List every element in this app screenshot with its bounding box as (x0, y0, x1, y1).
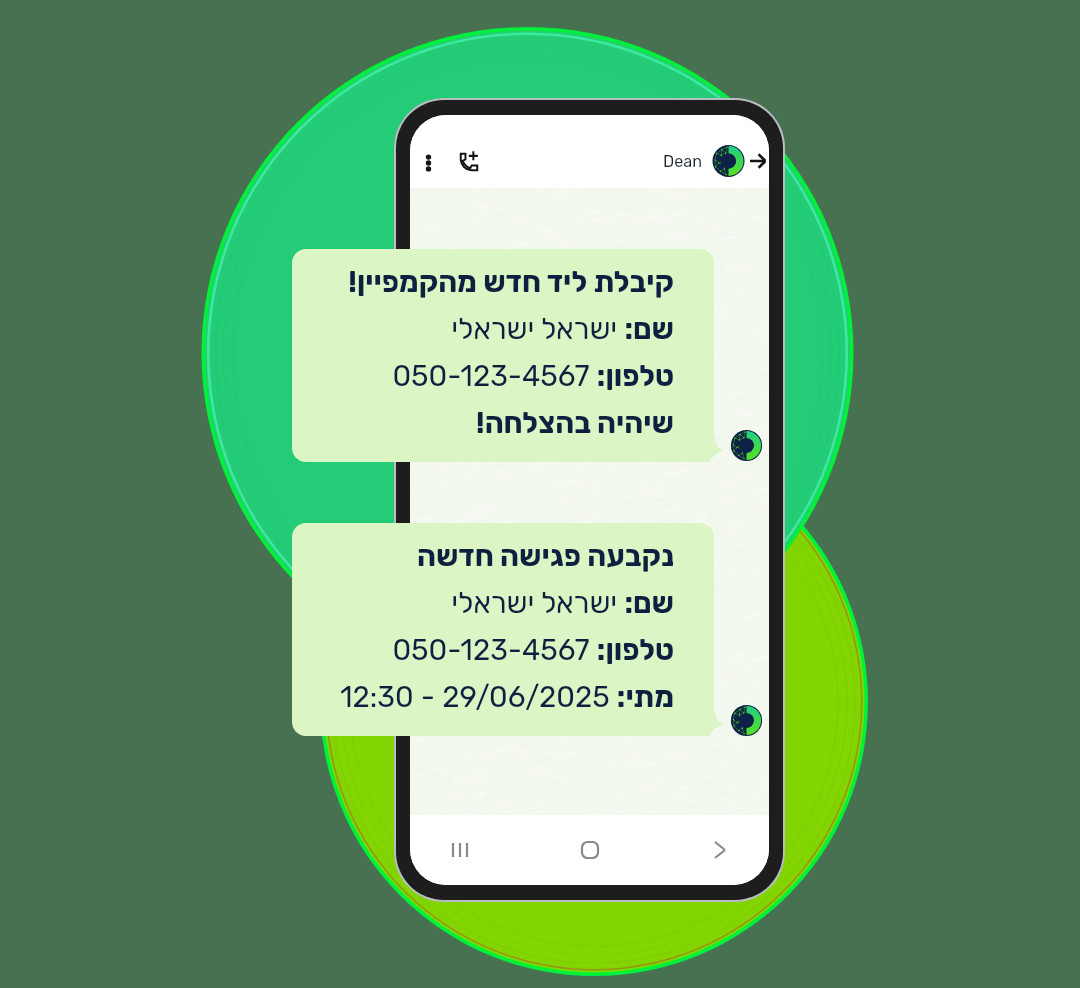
button[interactable]: קיבלת ליד חדש מהקמפיין! (292, 249, 714, 462)
staticText: קיבלת ליד חדש מהקמפיין! (293, 265, 674, 318)
button[interactable]: Home (570, 830, 610, 870)
staticText: Dean (663, 152, 702, 171)
staticText: שם: ישראל ישראלי (293, 586, 674, 639)
staticText: שיהיה בהצלחה! (293, 406, 674, 459)
button[interactable]: Add call (455, 149, 482, 176)
staticText: טלפון: 050-123-4567 (293, 359, 674, 412)
staticText: נקבעה פגישה חדשה (293, 539, 674, 592)
button[interactable]: נקבעה פגישה חדשה (292, 523, 714, 736)
button[interactable]: Dean profile (662, 140, 768, 182)
staticText: שם: ישראל ישראלי (293, 312, 674, 365)
staticText: מתי: 29/06/2025 - 12:30 (293, 680, 674, 733)
button[interactable]: More options (413, 147, 444, 179)
button[interactable]: Back (700, 830, 740, 870)
staticText: טלפון: 050-123-4567 (293, 633, 674, 686)
button[interactable]: Recents (440, 830, 480, 870)
